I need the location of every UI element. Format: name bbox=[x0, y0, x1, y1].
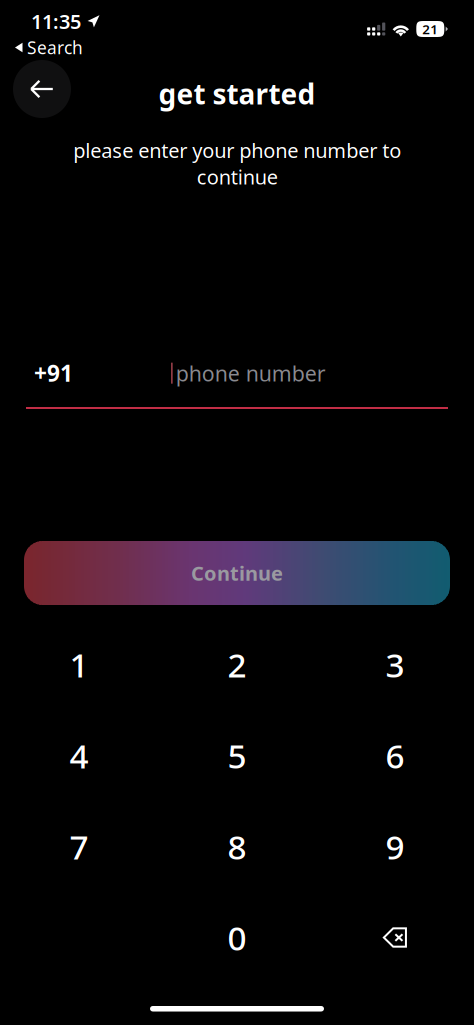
staticText: 9 bbox=[385, 824, 404, 869]
button[interactable]: 5 bbox=[158, 710, 316, 801]
button[interactable]: 8 bbox=[158, 801, 316, 892]
staticText: 3 bbox=[385, 642, 404, 687]
button[interactable]: Search bbox=[15, 36, 83, 59]
staticText: Continue bbox=[191, 560, 283, 586]
button[interactable]: 3 bbox=[316, 619, 474, 710]
button[interactable]: 4 bbox=[0, 710, 158, 801]
button[interactable]: Continue bbox=[24, 541, 450, 605]
staticText: 11:35 bbox=[31, 8, 81, 35]
button[interactable]: Back bbox=[13, 60, 71, 118]
button[interactable]: 2 bbox=[158, 619, 316, 710]
staticText: phone number bbox=[176, 359, 326, 387]
button[interactable]: 1 bbox=[0, 619, 158, 710]
staticText: 1 bbox=[69, 642, 88, 687]
staticText: 8 bbox=[227, 824, 246, 869]
staticText: please enter your phone number to contin… bbox=[73, 137, 401, 190]
staticText: get started bbox=[158, 75, 315, 112]
button[interactable]: 7 bbox=[0, 801, 158, 892]
staticText: 2 bbox=[227, 642, 246, 687]
button[interactable]: 6 bbox=[316, 710, 474, 801]
staticText: 0 bbox=[227, 915, 246, 960]
staticText: 6 bbox=[385, 733, 404, 778]
button[interactable]: 0 bbox=[158, 892, 316, 983]
staticText: 21 bbox=[422, 20, 438, 38]
button[interactable]: 9 bbox=[316, 801, 474, 892]
staticText: 5 bbox=[227, 733, 246, 778]
staticText: 7 bbox=[69, 824, 88, 869]
button[interactable]: Delete bbox=[316, 892, 474, 983]
staticText: Search bbox=[27, 36, 83, 59]
staticText: +91 bbox=[34, 358, 73, 388]
staticText: 4 bbox=[69, 733, 88, 778]
